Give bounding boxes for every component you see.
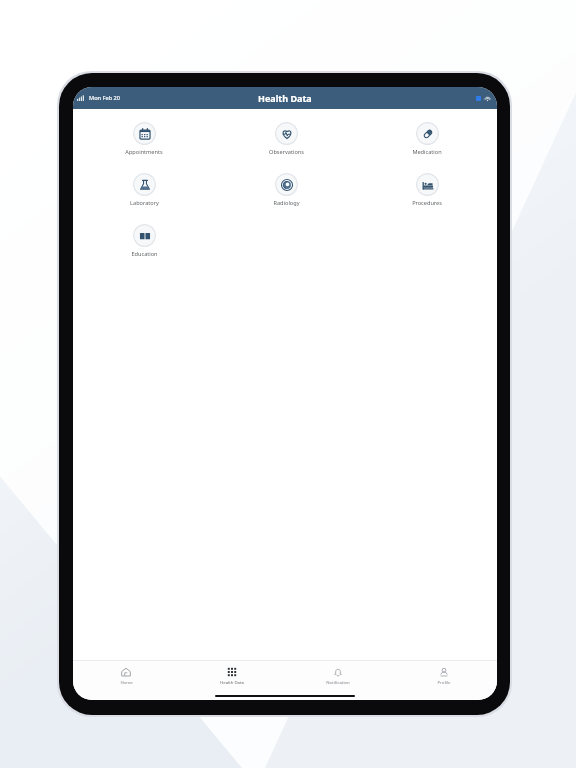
staticText: Health Data	[258, 92, 312, 104]
button[interactable]: Procedures	[391, 171, 463, 209]
button[interactable]: Observations	[250, 120, 322, 158]
staticText: Laboratory	[130, 199, 159, 207]
button[interactable]: Health Data	[179, 661, 285, 691]
button[interactable]: Medication	[391, 120, 463, 158]
staticText: Radiology	[273, 199, 300, 207]
staticText: Education	[131, 250, 158, 258]
button[interactable]: Home	[73, 661, 179, 691]
button[interactable]: Laboratory	[108, 171, 180, 209]
button[interactable]: Notification	[285, 661, 391, 691]
staticText: Mon Feb 20	[89, 94, 121, 102]
button[interactable]: Appointments	[108, 120, 180, 158]
staticText: Profile	[437, 679, 451, 685]
staticText: Appointments	[125, 148, 163, 156]
button[interactable]: Profile	[391, 661, 497, 691]
staticText: Home	[120, 679, 133, 685]
staticText: Procedures	[412, 199, 442, 207]
staticText: Observations	[269, 148, 304, 156]
button[interactable]: Education	[108, 222, 180, 260]
staticText: Health Data	[220, 679, 244, 685]
button[interactable]: Radiology	[250, 171, 322, 209]
staticText: Notification	[326, 679, 350, 685]
staticText: Medication	[412, 148, 442, 156]
